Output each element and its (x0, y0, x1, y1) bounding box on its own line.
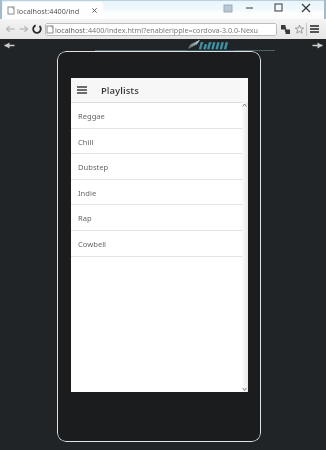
button[interactable]: Reggae (71, 103, 248, 129)
staticText: Dubstep (78, 162, 109, 172)
staticText: Rap (78, 213, 92, 223)
button[interactable]: Reload (30, 21, 44, 37)
staticText: Cowbell (78, 239, 107, 249)
button[interactable]: Rap (71, 205, 248, 231)
button[interactable]: Close tab (91, 7, 98, 14)
staticText: Reggae (78, 111, 105, 121)
button[interactable]: Extensions (278, 22, 292, 36)
staticText: Playlists (101, 84, 139, 97)
button[interactable]: localhost (45, 23, 277, 36)
staticText: Chill (78, 137, 94, 147)
button[interactable]: Expand right panel (310, 40, 324, 50)
button[interactable]: localhost:4400/ind (3, 2, 103, 19)
button[interactable]: Indie (71, 180, 248, 205)
button[interactable]: Cowbell (71, 231, 248, 257)
button[interactable]: Maximize (270, 0, 287, 15)
staticText: localhost:4400/ind (17, 6, 80, 16)
button[interactable]: Open navigation menu (74, 82, 90, 98)
button[interactable]: Close window (297, 0, 314, 15)
button[interactable]: Chill (71, 129, 248, 154)
button[interactable]: Bookmark (292, 22, 306, 36)
staticText: Indie (78, 188, 97, 198)
staticText: localhost (55, 25, 86, 35)
button[interactable]: Minimize (241, 0, 258, 15)
button[interactable]: Chrome menu (307, 22, 321, 36)
button[interactable]: Open navigation menu (71, 78, 248, 102)
staticText: :4400/index.html?enableripple=cordova-3.… (86, 25, 259, 35)
button[interactable]: Application icon (221, 1, 235, 15)
button[interactable]: Dubstep (71, 154, 248, 180)
button[interactable]: Expand left panel (2, 40, 16, 50)
button[interactable]: Forward (17, 21, 30, 37)
button[interactable]: Back (4, 21, 17, 37)
